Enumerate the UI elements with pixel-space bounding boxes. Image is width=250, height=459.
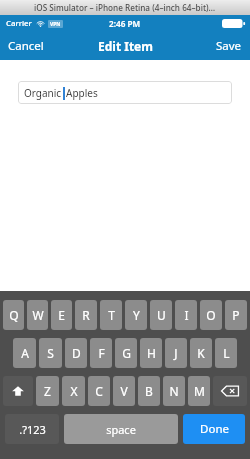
staticText: Q bbox=[9, 307, 19, 323]
staticText: iOS Simulator – iPhone Retina (4–inch 64… bbox=[34, 2, 216, 13]
staticText: Carrier bbox=[6, 18, 32, 29]
button[interactable]: E bbox=[51, 300, 72, 330]
staticText: O bbox=[206, 307, 216, 323]
staticText: K bbox=[197, 345, 205, 361]
button[interactable]: U bbox=[150, 300, 172, 330]
button[interactable]: Z bbox=[36, 376, 59, 406]
button[interactable]: L bbox=[215, 338, 237, 368]
button[interactable]: N bbox=[163, 376, 185, 406]
button[interactable]: space bbox=[64, 414, 178, 444]
staticText: Apples bbox=[66, 86, 98, 100]
button[interactable]: Q bbox=[3, 300, 24, 330]
staticText: M bbox=[194, 383, 205, 399]
staticText: .?123 bbox=[19, 422, 46, 437]
button[interactable]: Done bbox=[183, 414, 245, 444]
button[interactable]: Organic bbox=[18, 81, 232, 104]
button[interactable]: Cancel bbox=[0, 33, 52, 59]
staticText: Done bbox=[200, 421, 229, 437]
staticText: VPN bbox=[50, 21, 61, 28]
button[interactable]: Delete bbox=[213, 376, 247, 406]
button[interactable]: Shift bbox=[3, 376, 33, 406]
staticText: Save bbox=[216, 38, 242, 54]
staticText: W bbox=[32, 307, 44, 323]
button[interactable]: X bbox=[62, 376, 85, 406]
button[interactable]: F bbox=[90, 338, 112, 368]
staticText: J bbox=[174, 345, 178, 361]
button[interactable]: R bbox=[75, 300, 97, 330]
button[interactable]: P bbox=[225, 300, 247, 330]
staticText: space bbox=[106, 422, 136, 437]
button[interactable]: H bbox=[140, 338, 162, 368]
button[interactable]: K bbox=[190, 338, 212, 368]
staticText: X bbox=[70, 383, 78, 399]
staticText: H bbox=[147, 345, 156, 361]
staticText: S bbox=[47, 345, 54, 361]
button[interactable]: I bbox=[175, 300, 197, 330]
staticText: Cancel bbox=[8, 38, 44, 54]
staticText: Edit Item bbox=[98, 38, 153, 54]
staticText: I bbox=[184, 307, 189, 323]
staticText: 2:46 PM bbox=[109, 18, 141, 29]
staticText: Z bbox=[44, 383, 51, 399]
staticText: L bbox=[223, 345, 230, 361]
staticText: P bbox=[232, 307, 240, 323]
staticText: B bbox=[145, 383, 153, 399]
button[interactable]: V bbox=[113, 376, 135, 406]
button[interactable]: .?123 bbox=[5, 414, 59, 444]
button[interactable]: D bbox=[65, 338, 87, 368]
button[interactable]: O bbox=[200, 300, 222, 330]
button[interactable]: W bbox=[27, 300, 48, 330]
button[interactable]: B bbox=[138, 376, 160, 406]
staticText: Organic bbox=[24, 86, 62, 100]
staticText: V bbox=[120, 383, 128, 399]
staticText: D bbox=[72, 345, 81, 361]
staticText: C bbox=[95, 383, 103, 399]
button[interactable]: A bbox=[13, 338, 36, 368]
staticText: Y bbox=[133, 307, 140, 323]
staticText: R bbox=[82, 307, 90, 323]
button[interactable]: Y bbox=[125, 300, 147, 330]
staticText: T bbox=[108, 307, 115, 323]
button[interactable]: T bbox=[100, 300, 122, 330]
staticText: A bbox=[21, 345, 29, 361]
button[interactable]: C bbox=[88, 376, 110, 406]
button[interactable]: S bbox=[39, 338, 62, 368]
staticText: E bbox=[58, 307, 65, 323]
staticText: G bbox=[122, 345, 131, 361]
button[interactable]: G bbox=[115, 338, 137, 368]
button[interactable]: J bbox=[165, 338, 187, 368]
staticText: N bbox=[169, 383, 179, 399]
button[interactable]: M bbox=[188, 376, 210, 406]
staticText: F bbox=[98, 345, 105, 361]
button[interactable]: Save bbox=[208, 33, 250, 59]
staticText: U bbox=[157, 307, 166, 323]
